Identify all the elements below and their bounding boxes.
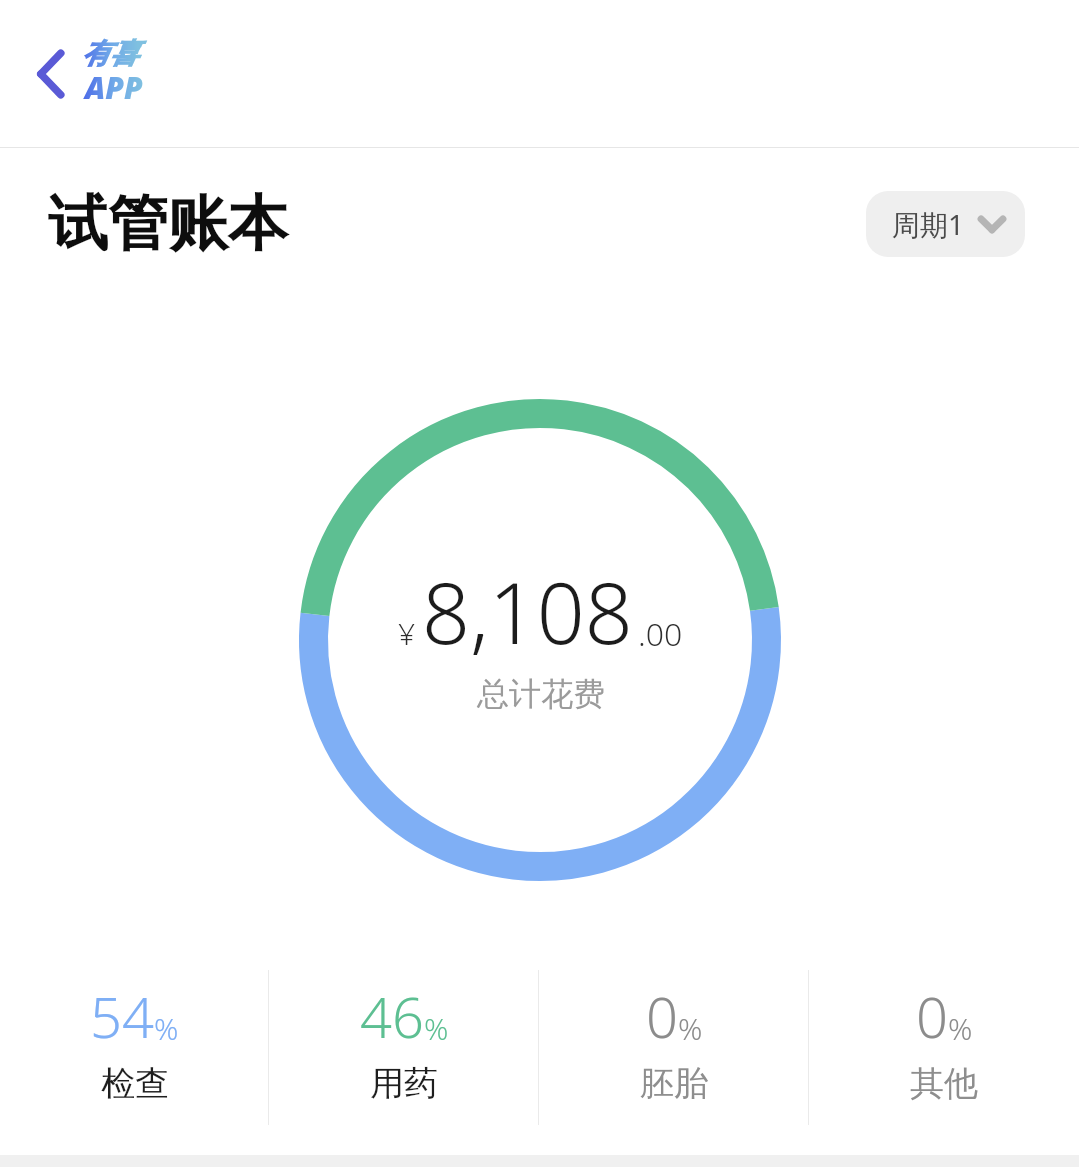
staticText: %: [424, 1008, 449, 1049]
staticText: 54: [90, 978, 154, 1054]
button[interactable]: 0: [539, 960, 809, 1135]
staticText: %: [948, 1008, 973, 1049]
staticText: 试管账本: [48, 186, 288, 262]
staticText: 0: [916, 978, 948, 1054]
button[interactable]: 54: [0, 960, 269, 1135]
staticText: 8,108: [422, 554, 633, 668]
staticText: 周期1: [892, 205, 965, 243]
staticText: 胚胎: [640, 1062, 708, 1105]
staticText: 总计花费: [477, 674, 605, 714]
button[interactable]: 周期1: [866, 191, 1025, 257]
staticText: %: [678, 1008, 703, 1049]
button[interactable]: 46: [269, 960, 539, 1135]
button[interactable]: Back: [26, 30, 146, 118]
staticText: 检查: [101, 1062, 169, 1105]
staticText: 用药: [370, 1062, 438, 1105]
button[interactable]: 0: [809, 960, 1079, 1135]
staticText: .00: [638, 612, 683, 656]
staticText: %: [154, 1008, 179, 1049]
staticText: APP: [85, 67, 143, 108]
staticText: 有喜: [82, 36, 138, 71]
staticText: 其他: [910, 1062, 978, 1105]
staticText: 0: [646, 978, 678, 1054]
staticText: ¥: [398, 613, 416, 654]
staticText: 46: [360, 978, 424, 1054]
